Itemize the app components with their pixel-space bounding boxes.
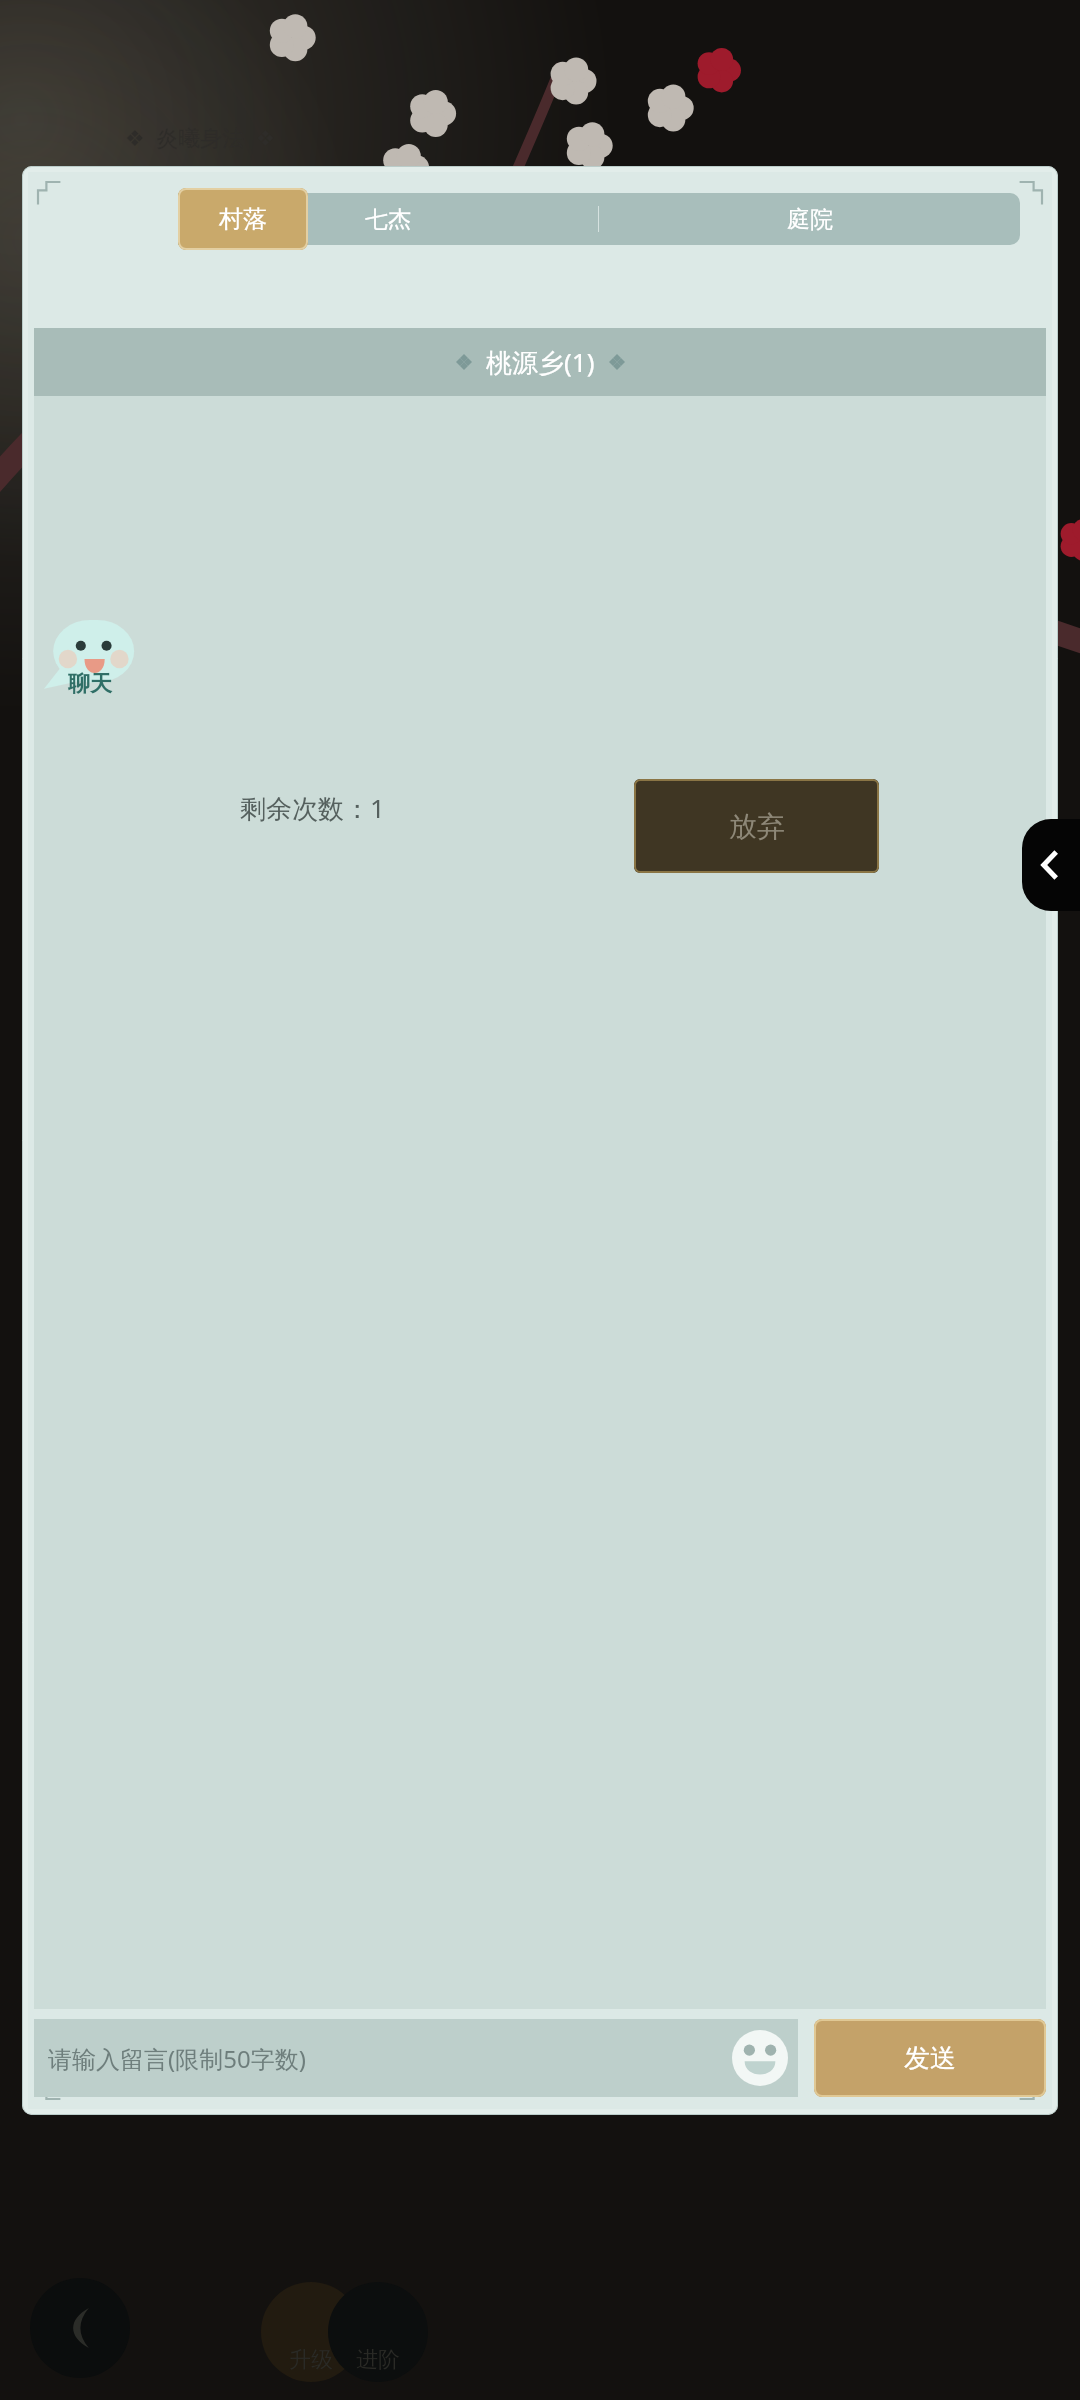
button[interactable]: 放弃 [634, 779, 879, 873]
button[interactable]: Collapse [1022, 819, 1080, 911]
staticText: 发送 [904, 2042, 956, 2075]
button[interactable]: 请输入留言(限制50字数) [34, 2019, 798, 2097]
button[interactable]: 桃源乡(1) [34, 328, 1046, 396]
button[interactable]: 村落 [178, 188, 308, 250]
staticText: 放弃 [729, 809, 785, 844]
button[interactable]: 发送 [814, 2019, 1046, 2097]
staticText: 剩余次数：1 [240, 790, 385, 826]
staticText: 进阶 [356, 2346, 400, 2374]
button[interactable]: 进阶 [328, 2282, 428, 2382]
button[interactable]: 聊天 [44, 620, 136, 698]
staticText: 请输入留言(限制50字数) [48, 2042, 306, 2075]
button[interactable]: 庭院 [599, 193, 1020, 245]
staticText: 七杰 [365, 205, 411, 234]
button[interactable]: Back [30, 2278, 130, 2378]
staticText: 聊天 [68, 670, 112, 698]
staticText: 庭院 [787, 205, 833, 234]
button[interactable]: 七杰 [178, 193, 598, 245]
staticText: 桃源乡(1) [486, 344, 595, 380]
button[interactable]: 升级 [261, 2282, 361, 2382]
staticText: ❖ 炎曦身法 ❖ [125, 122, 276, 152]
button[interactable]: Emoji [732, 2030, 788, 2086]
staticText: 村落 [219, 204, 267, 234]
staticText: 升级 [289, 2346, 333, 2374]
